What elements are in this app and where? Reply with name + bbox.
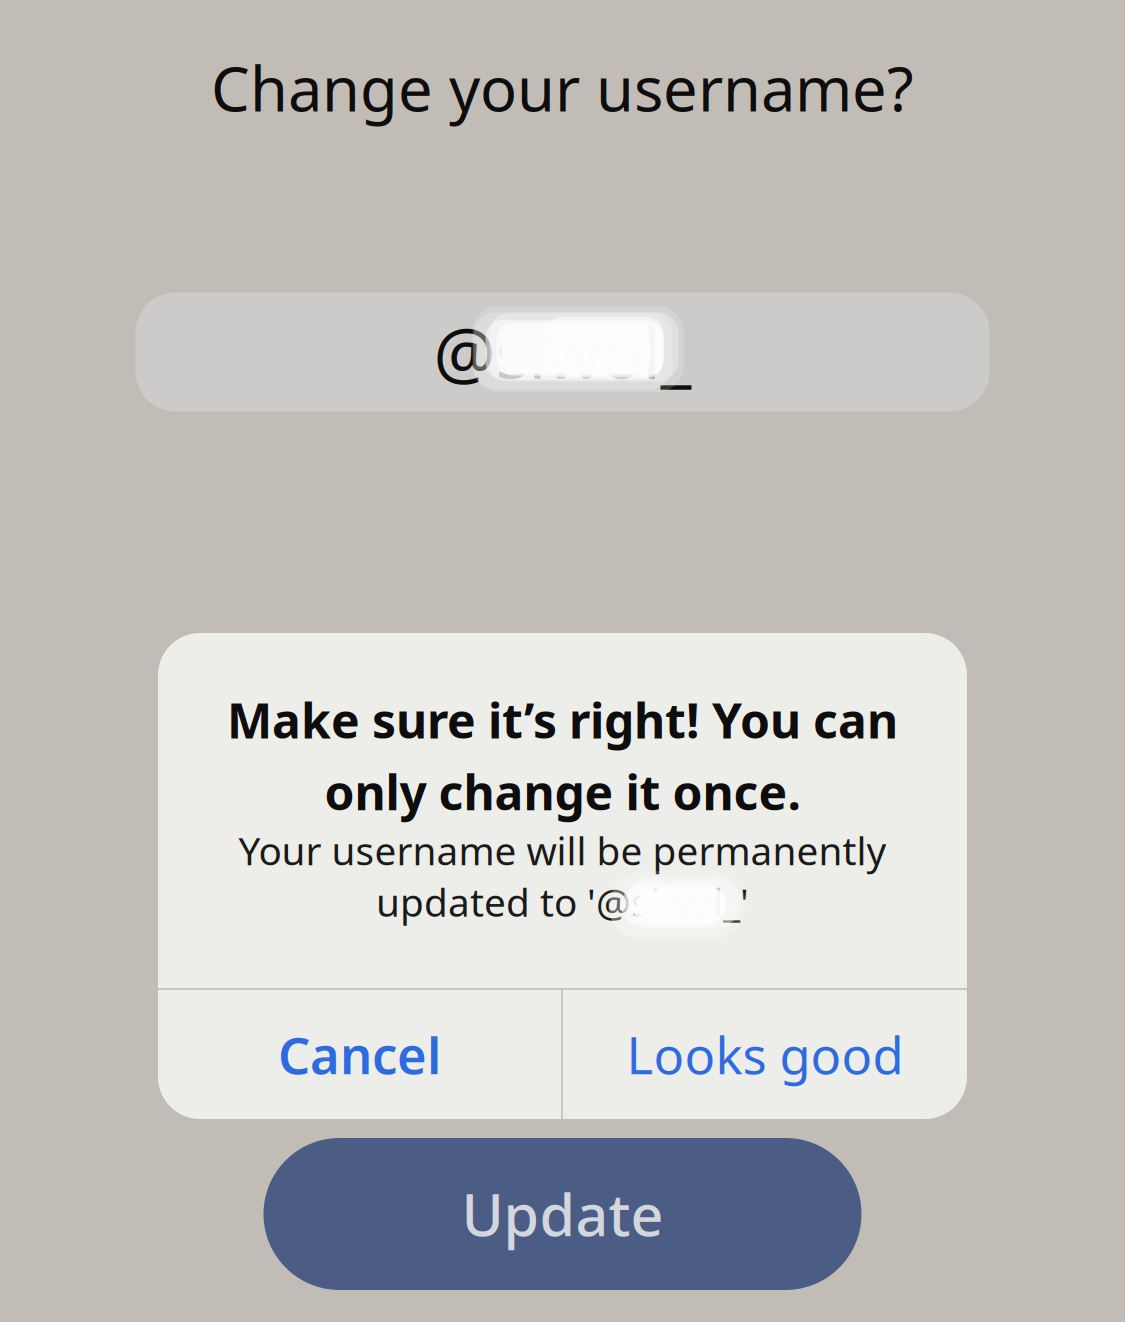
staticText: only change it once. [324,760,800,823]
staticText: @siwol_ [433,306,691,398]
staticText: Change your username? [211,47,914,128]
staticText: Make sure it’s right! You can [227,688,898,752]
button[interactable]: Looks good [563,990,967,1119]
staticText: Update [461,1176,663,1252]
staticText: Cancel [278,1021,441,1088]
staticText: Your username will be permanently [238,824,886,876]
button[interactable]: Update [263,1138,861,1290]
staticText: Looks good [626,1021,903,1088]
button[interactable]: Cancel [158,990,561,1119]
staticText: updated to '@siwol_' [376,876,749,927]
